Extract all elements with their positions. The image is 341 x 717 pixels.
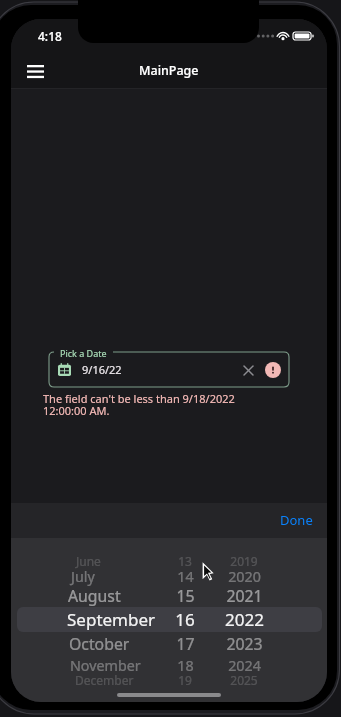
staticText: 2022 [225,608,264,631]
staticText: 17 [176,633,195,655]
staticText: 2019 [230,553,258,569]
staticText: 19 [178,672,192,688]
staticText: August [68,585,121,607]
staticText: July [71,567,95,586]
staticText: November [70,656,141,675]
button[interactable]: Menu [19,55,51,87]
staticText: 2025 [230,672,258,688]
other: Error [265,362,281,378]
staticText: 13 [178,553,192,569]
button[interactable]: Clear [238,360,258,380]
staticText: 4:18 [38,28,62,44]
staticText: 2020 [228,567,261,586]
staticText: October [69,633,130,655]
staticText: The field can't be less than 9/18/2022 1… [43,391,235,418]
staticText: 14 [177,567,194,586]
staticText: December [75,672,134,688]
staticText: MainPage [139,62,199,79]
staticText: 16 [175,608,195,631]
staticText: Done [280,511,313,529]
staticText: Pick a Date [60,347,107,359]
staticText: 2024 [228,656,261,675]
staticText: June [76,553,101,569]
staticText: 2023 [226,633,263,655]
staticText: 15 [176,585,195,607]
staticText: September [67,608,156,631]
staticText: 2021 [226,585,263,607]
staticText: 18 [177,656,194,675]
staticText: 9/16/22 [82,362,122,377]
button[interactable]: Done [271,505,322,535]
